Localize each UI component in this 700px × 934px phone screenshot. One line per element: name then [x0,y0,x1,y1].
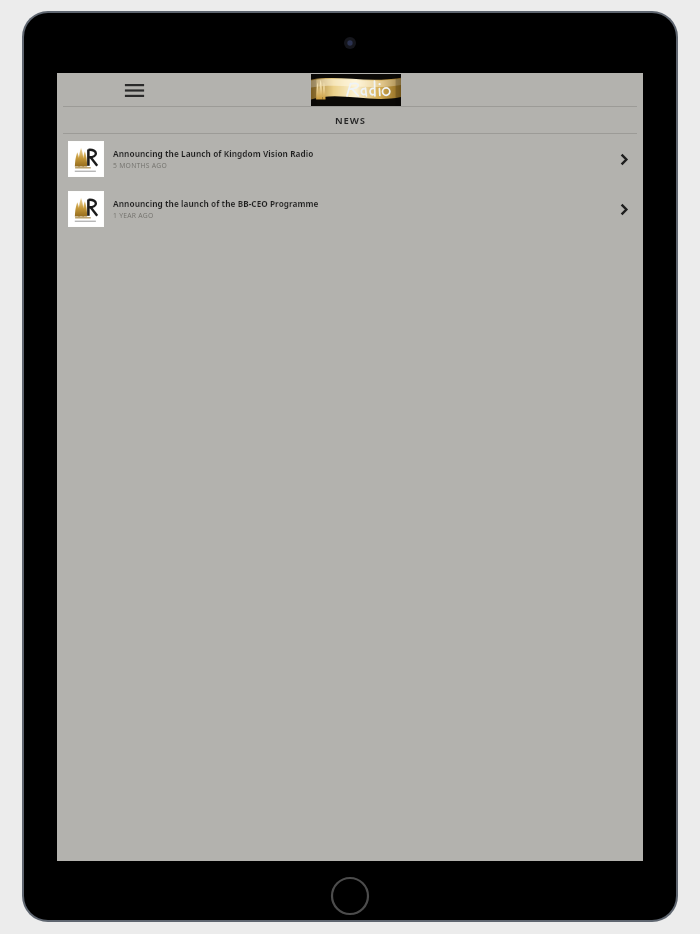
button[interactable]: Announcing the launch of the BB-CEO Prog… [57,184,643,234]
staticText: Announcing the launch of the BB-CEO Prog… [113,198,319,209]
staticText: 5 MONTHS AGO [113,161,168,170]
staticText: NEWS [335,114,366,127]
button[interactable]: Announcing the Launch of Kingdom Vision … [57,134,643,184]
button[interactable]: Open navigation menu [119,75,149,105]
staticText: 1 YEAR AGO [113,211,154,220]
button[interactable]: Kingdom Vision Radio [311,74,401,106]
staticText: Announcing the Launch of Kingdom Vision … [113,148,314,159]
